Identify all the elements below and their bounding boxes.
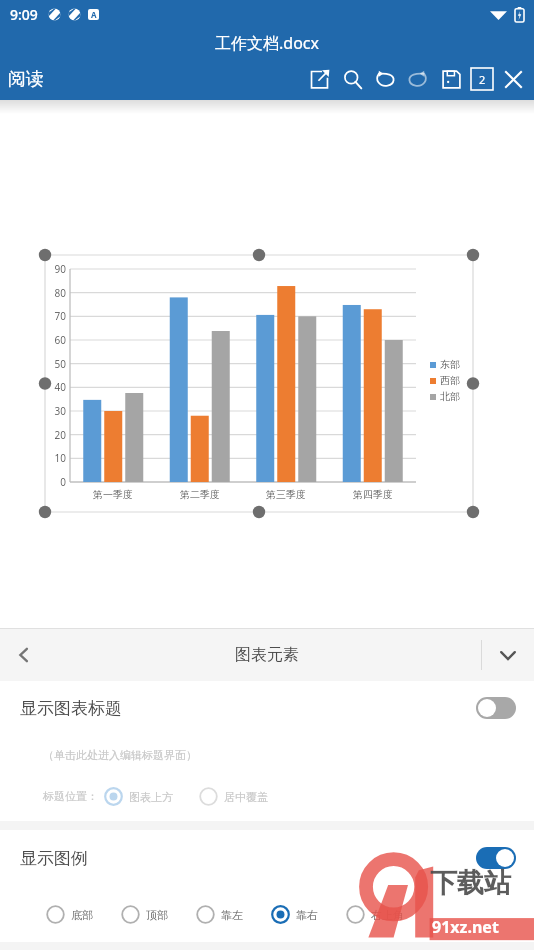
staticText: 阅读 [8,68,44,91]
staticText: 20 [54,428,66,442]
button[interactable]: 底部 [46,901,93,928]
staticText: 东部 [440,358,460,371]
staticText: 居中覆盖 [224,790,268,804]
staticText: 50 [54,357,66,371]
staticText: 第一季度 [93,488,133,501]
staticText: 标题位置： [43,789,98,803]
button[interactable]: 顶部 [121,901,168,928]
button[interactable]: 阅读 [0,62,52,97]
staticText: 图表上方 [129,790,173,804]
button[interactable]: Redo [405,66,431,92]
staticText: 右上角 [371,908,404,922]
staticText: 第三季度 [266,488,306,501]
staticText: 40 [54,380,66,394]
staticText: 80 [54,286,66,300]
button[interactable]: Close [500,66,526,92]
staticText: 显示图例 [20,848,88,869]
staticText: 70 [54,309,66,323]
staticText: A [91,9,97,20]
staticText: 第二季度 [180,488,220,501]
button[interactable]: Undo [372,66,398,92]
button[interactable]: 显示图表标题 [0,681,534,735]
button[interactable]: 图表上方 [104,783,173,810]
staticText: 30 [54,404,66,418]
staticText: 顶部 [146,908,168,922]
staticText: （单击此处进入编辑标题界面） [43,748,197,762]
button[interactable]: 显示图例 [0,830,534,886]
staticText: 底部 [71,908,93,922]
button[interactable]: Off [476,697,516,719]
button[interactable]: Edit [306,66,332,92]
staticText: 2 [479,72,486,87]
staticText: 10 [54,451,66,465]
staticText: 靠右 [296,908,318,922]
staticText: 60 [54,333,66,347]
staticText: 下载站 [430,866,511,900]
button[interactable]: 靠右 [271,901,318,928]
staticText: 0 [60,475,66,489]
button[interactable]: Save [438,66,464,92]
staticText: 90 [54,262,66,276]
staticText: 91xz.net [432,916,499,938]
staticText: 靠左 [221,908,243,922]
button[interactable]: Pages [471,68,493,90]
button[interactable]: Collapse [482,629,534,681]
staticText: 工作文档.docx [215,32,319,54]
staticText: 9:09 [10,5,38,24]
button[interactable]: 居中覆盖 [199,783,268,810]
staticText: 显示图表标题 [20,698,122,719]
button[interactable]: On [476,847,516,869]
staticText: 第四季度 [353,488,393,501]
staticText: 西部 [440,374,460,387]
button[interactable]: Back [0,631,48,679]
button[interactable]: Search [339,66,365,92]
button[interactable]: 右上角 [346,901,404,928]
staticText: 北部 [440,390,460,403]
button[interactable]: 靠左 [196,901,243,928]
staticText: 图表元素 [235,645,299,665]
